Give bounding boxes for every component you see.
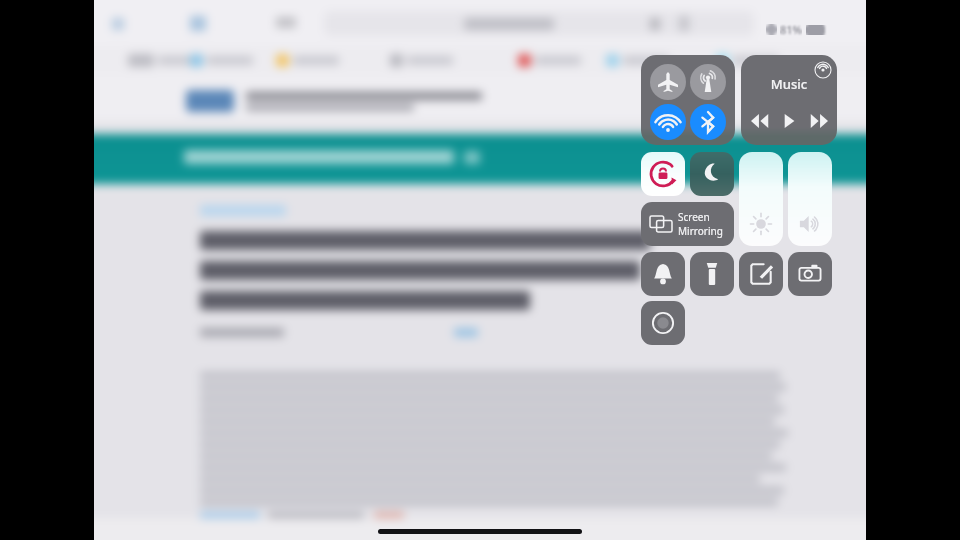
button[interactable]: Do Not Disturb (690, 152, 734, 196)
button[interactable]: AirPlay (741, 55, 837, 145)
button[interactable]: Wi-Fi (650, 104, 686, 140)
button[interactable]: Cellular Data (690, 64, 726, 100)
button[interactable]: Bluetooth (690, 104, 726, 140)
button[interactable]: Next (808, 111, 830, 131)
button[interactable]: Airplane Mode (641, 55, 735, 145)
button[interactable]: Play (778, 111, 800, 131)
button[interactable]: Volume (788, 152, 832, 246)
button[interactable]: Silent Mode (641, 252, 685, 296)
button[interactable]: Notes (739, 252, 783, 296)
staticText: Mirroring (678, 224, 723, 238)
button[interactable]: Screen (641, 202, 734, 246)
staticText: Screen (678, 210, 710, 224)
button[interactable]: Camera (788, 252, 832, 296)
button[interactable]: Brightness (739, 152, 783, 246)
button[interactable]: AirPlay (815, 62, 831, 78)
button[interactable]: Airplane Mode (650, 64, 686, 100)
button[interactable]: Screen Recording (641, 301, 685, 345)
staticText: Music (741, 75, 837, 93)
button[interactable]: Flashlight (690, 252, 734, 296)
button[interactable]: Rotation Lock (641, 152, 685, 196)
staticText: 81% (780, 22, 802, 37)
button[interactable]: Previous (749, 111, 771, 131)
